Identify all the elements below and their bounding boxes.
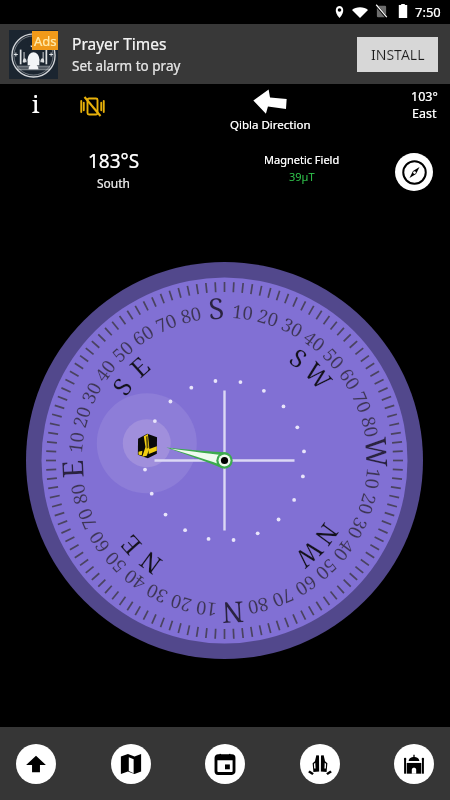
staticText: 39µT [289,169,315,184]
button[interactable]: Calendar [205,744,245,784]
button[interactable]: Ads [0,24,450,84]
button[interactable]: Prayer [300,744,340,784]
button[interactable]: Calibrate compass [395,153,433,191]
button[interactable]: Mosque [394,744,434,784]
button[interactable]: INSTALL [357,37,438,72]
button[interactable]: Map [111,744,151,784]
staticText: 103° [411,88,438,105]
staticText: Set alarm to pray [72,57,181,75]
staticText: Ads [34,32,57,50]
staticText: 7:50 [415,3,441,21]
button[interactable]: Vibration off [76,88,108,120]
staticText: Magnetic Field [264,152,340,167]
staticText: South [97,175,131,191]
button[interactable]: Info [20,87,52,119]
button[interactable]: Compass [16,744,56,784]
staticText: 183°S [88,148,140,174]
staticText: Qibla Direction [230,117,311,133]
staticText: i [32,88,40,119]
staticText: East [412,105,437,122]
staticText: INSTALL [371,45,425,64]
staticText: Prayer Times [72,33,167,54]
